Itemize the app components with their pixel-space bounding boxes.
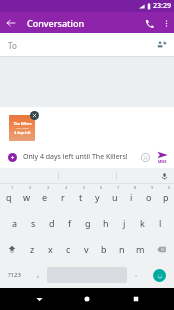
- staticText: 5: [83, 185, 86, 190]
- button[interactable]: Insert emoji: [137, 149, 153, 165]
- staticText: w: [23, 191, 31, 203]
- staticText: MMS: [158, 159, 167, 164]
- button[interactable]: e: [36, 184, 54, 210]
- button[interactable]: Emoji keyboard: [153, 269, 166, 282]
- staticText: Only 4 days left until The Killers!: [23, 152, 137, 162]
- staticText: 8: [134, 185, 137, 190]
- staticText: s: [31, 217, 36, 229]
- staticText: To: [8, 40, 17, 51]
- button[interactable]: x: [41, 236, 59, 262]
- button[interactable]: j: [115, 210, 133, 236]
- button[interactable]: ,: [29, 262, 47, 288]
- staticText: 0: [168, 185, 171, 190]
- button[interactable]: [116, 168, 174, 184]
- staticText: ?123: [8, 271, 21, 279]
- staticText: v: [84, 243, 89, 255]
- staticText: g: [85, 217, 91, 229]
- button[interactable]: .: [127, 262, 145, 288]
- button[interactable]: c: [59, 236, 77, 262]
- button[interactable]: s: [24, 210, 43, 236]
- button[interactable]: Voice input: [158, 170, 170, 182]
- staticText: f: [68, 217, 72, 229]
- button[interactable]: r: [54, 184, 72, 210]
- staticText: 9: [151, 185, 154, 190]
- button[interactable]: k: [133, 210, 151, 236]
- button[interactable]: Home: [77, 289, 97, 309]
- staticText: h: [103, 217, 109, 229]
- staticText: 23:29: [153, 1, 171, 11]
- button[interactable]: Call: [140, 14, 158, 32]
- staticText: e: [42, 191, 48, 203]
- staticText: .: [135, 268, 138, 279]
- staticText: q: [6, 191, 12, 203]
- button[interactable]: ?123: [0, 262, 29, 288]
- staticText: 1: [11, 185, 14, 190]
- staticText: The Killers: [13, 121, 32, 126]
- staticText: u: [112, 191, 118, 203]
- button[interactable]: d: [43, 210, 61, 236]
- button[interactable]: h: [97, 210, 115, 236]
- button[interactable]: w: [18, 184, 36, 210]
- button[interactable]: t: [72, 184, 89, 210]
- staticText: y: [95, 191, 100, 203]
- button[interactable]: y: [89, 184, 106, 210]
- staticText: 3: [47, 185, 50, 190]
- staticText: o: [146, 191, 152, 203]
- staticText: b: [101, 243, 107, 255]
- button[interactable]: Backspace: [149, 236, 174, 262]
- button[interactable]: u: [106, 184, 123, 210]
- button[interactable]: o: [140, 184, 157, 210]
- button[interactable]: Add contact: [153, 36, 171, 54]
- staticText: 4 days left: [14, 131, 31, 135]
- button[interactable]: l: [151, 210, 169, 236]
- button[interactable]: i: [123, 184, 140, 210]
- button[interactable]: Add attachment: [4, 149, 20, 165]
- button[interactable]: Back: [2, 14, 20, 32]
- button[interactable]: Send MMS: [153, 148, 171, 166]
- button[interactable]: v: [77, 236, 95, 262]
- staticText: d: [49, 217, 55, 229]
- button[interactable]: Recents: [126, 289, 146, 309]
- button[interactable]: More options: [158, 15, 174, 31]
- staticText: n: [119, 243, 125, 255]
- button[interactable]: [58, 168, 116, 184]
- staticText: 2: [29, 185, 32, 190]
- button[interactable]: Attachment preview: [9, 115, 35, 141]
- button[interactable]: z: [24, 236, 41, 262]
- button[interactable]: q: [0, 184, 18, 210]
- staticText: c: [66, 243, 71, 255]
- staticText: 6: [100, 185, 103, 190]
- button[interactable]: Back: [29, 289, 49, 309]
- staticText: 7: [117, 185, 120, 190]
- button[interactable]: [0, 168, 58, 184]
- staticText: ,: [37, 268, 40, 279]
- button[interactable]: Shift: [0, 236, 24, 262]
- staticText: Conversation: [27, 17, 85, 29]
- staticText: x: [48, 243, 53, 255]
- staticText: ONLY A FEW: [16, 127, 29, 130]
- button[interactable]: f: [61, 210, 79, 236]
- button[interactable]: m: [131, 236, 149, 262]
- button[interactable]: p: [157, 184, 174, 210]
- button[interactable]: a: [5, 210, 24, 236]
- button[interactable]: n: [113, 236, 131, 262]
- staticText: t: [79, 191, 83, 203]
- staticText: k: [140, 217, 145, 229]
- button[interactable]: Remove attachment: [30, 111, 39, 120]
- staticText: l: [159, 217, 162, 229]
- button[interactable]: b: [95, 236, 113, 262]
- staticText: p: [163, 191, 169, 203]
- staticText: a: [12, 217, 18, 229]
- staticText: i: [130, 191, 133, 203]
- staticText: 4: [65, 185, 68, 190]
- staticText: r: [61, 191, 65, 203]
- staticText: z: [30, 243, 35, 255]
- staticText: j: [123, 217, 126, 229]
- staticText: m: [136, 243, 145, 255]
- button[interactable]: g: [79, 210, 97, 236]
